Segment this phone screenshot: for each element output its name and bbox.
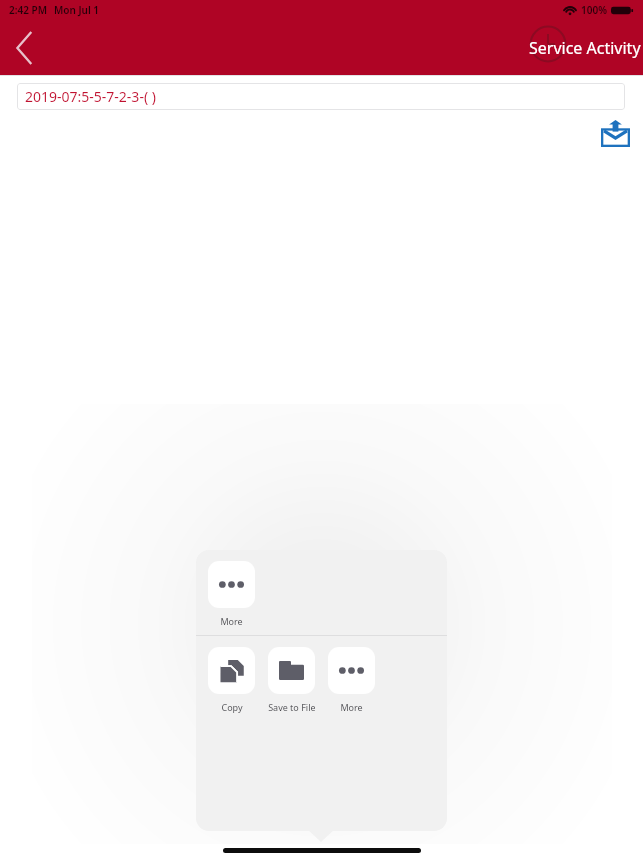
staticText: Service Activity bbox=[529, 37, 641, 59]
staticText: More bbox=[220, 615, 243, 627]
staticText: Copy bbox=[221, 701, 243, 713]
button[interactable]: Copy bbox=[208, 647, 255, 713]
button[interactable]: Service Activity bbox=[513, 24, 641, 72]
button[interactable]: More bbox=[328, 647, 375, 713]
staticText: 100% bbox=[581, 3, 607, 17]
button[interactable]: More bbox=[208, 561, 255, 627]
staticText: More bbox=[340, 701, 363, 713]
staticText: 2019-07:5-5-7-2-3-( ) bbox=[25, 87, 156, 106]
button[interactable]: Share bbox=[596, 114, 634, 152]
staticText: Save to Files bbox=[268, 701, 315, 713]
button[interactable]: Back bbox=[2, 26, 46, 70]
staticText: 2:42 PM bbox=[9, 3, 47, 17]
button[interactable]: Save to Files bbox=[268, 647, 315, 713]
button[interactable]: 2019-07:5-5-7-2-3-( ) bbox=[17, 83, 625, 110]
staticText: Mon Jul 1 bbox=[54, 3, 100, 17]
